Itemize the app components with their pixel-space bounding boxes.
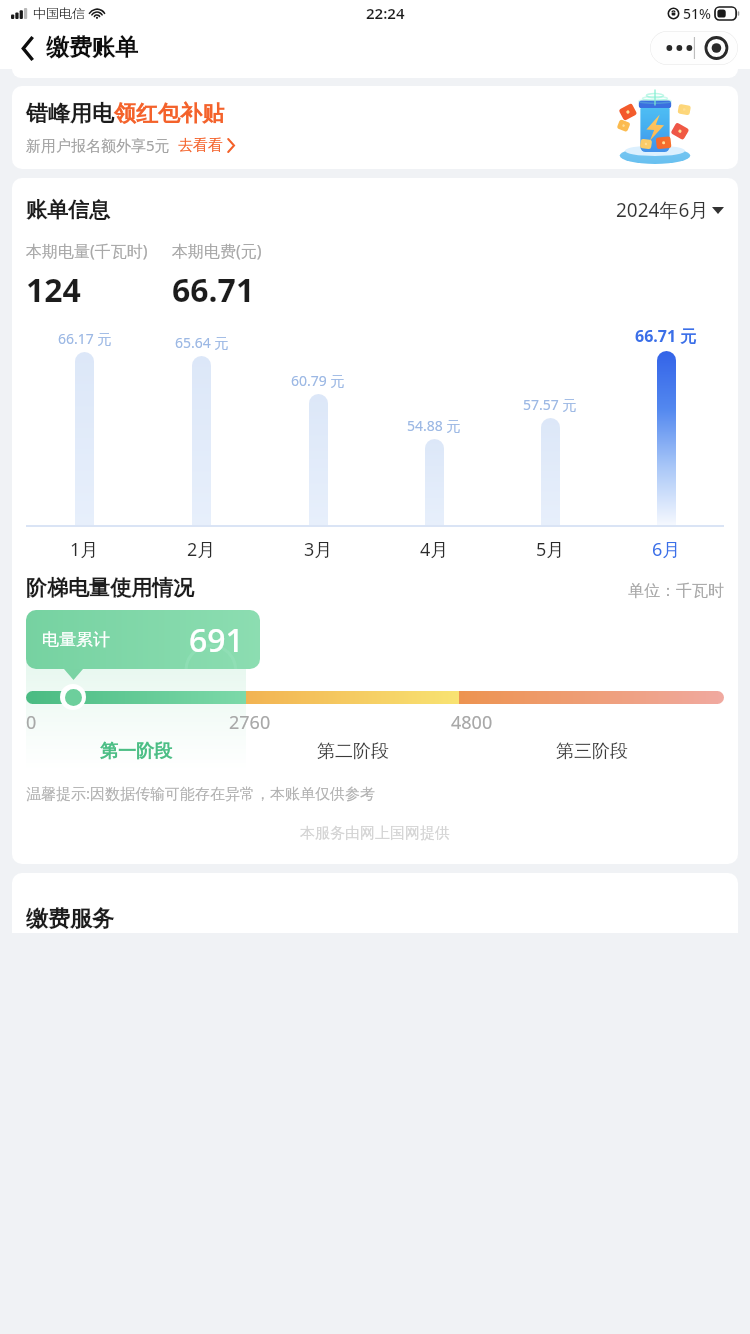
staticText: 60.79 元: [291, 371, 345, 390]
staticText: 电量累计: [42, 629, 110, 650]
staticText: 5月: [536, 537, 565, 562]
staticText: 本期电费(元): [172, 240, 262, 262]
staticText: 4月: [420, 537, 449, 562]
staticText: 缴费账单: [46, 33, 138, 62]
button[interactable]: 第三阶段: [459, 740, 724, 763]
staticText: 单位：千瓦时: [628, 581, 724, 601]
staticText: 中国电信: [33, 5, 85, 21]
button[interactable]: 第一阶段: [26, 740, 246, 763]
staticText: 1月: [70, 537, 99, 562]
button[interactable]: 错峰用电: [12, 86, 738, 169]
staticText: 新用户报名额外享5元: [26, 135, 170, 155]
staticText: 2月: [187, 537, 216, 562]
staticText: 66.71 元: [635, 325, 697, 347]
button[interactable]: Mini program menu: [650, 31, 738, 65]
staticText: 691: [189, 618, 244, 662]
staticText: 温馨提示:因数据传输可能存在异常，本账单仅供参考: [26, 783, 376, 803]
staticText: 缴费服务: [26, 905, 114, 933]
button[interactable]: 第二阶段: [246, 740, 459, 763]
staticText: 6月: [652, 537, 681, 562]
staticText: 3月: [304, 537, 333, 562]
staticText: 4800: [451, 710, 493, 734]
button[interactable]: Back: [12, 32, 44, 64]
staticText: 本期电量(千瓦时): [26, 240, 148, 262]
staticText: 账单信息: [26, 197, 110, 223]
staticText: 66.71: [172, 268, 255, 312]
staticText: 51%: [683, 4, 711, 23]
staticText: 第二阶段: [317, 740, 389, 763]
staticText: 124: [26, 268, 81, 312]
staticText: 66.17 元: [58, 329, 112, 348]
staticText: 领红包补贴: [114, 100, 224, 128]
staticText: 第一阶段: [100, 740, 172, 763]
staticText: 22:24: [366, 3, 405, 23]
staticText: 第三阶段: [556, 740, 628, 763]
staticText: 2760: [229, 710, 271, 734]
button[interactable]: 2024年6月: [616, 197, 724, 223]
staticText: 错峰用电: [26, 100, 114, 128]
staticText: 阶梯电量使用情况: [26, 575, 194, 601]
staticText: 2024年6月: [616, 197, 709, 223]
staticText: 65.64 元: [175, 333, 229, 352]
staticText: 54.88 元: [407, 416, 461, 435]
staticText: 去看看: [178, 136, 223, 155]
staticText: 0: [26, 710, 37, 734]
staticText: 本服务由网上国网提供: [26, 824, 724, 843]
staticText: 57.57 元: [523, 395, 577, 414]
